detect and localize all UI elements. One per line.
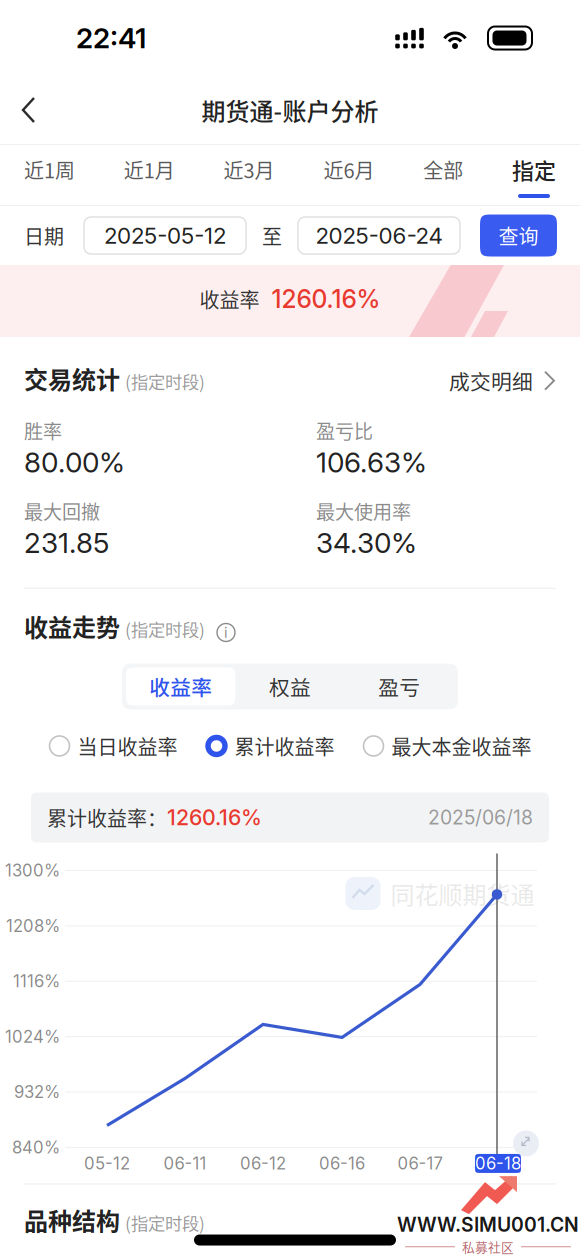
staticText: 盈亏 [378, 671, 420, 701]
button[interactable]: 全部 [423, 145, 463, 205]
staticText: 查询 [498, 221, 538, 250]
staticText: (指定时段) [125, 616, 205, 641]
staticText: 06-16 [319, 1153, 365, 1174]
button[interactable]: 收益率 [126, 667, 235, 705]
button[interactable]: 近6月 [323, 145, 374, 205]
button[interactable]: 近3月 [224, 145, 275, 205]
staticText: 06-12 [240, 1153, 286, 1174]
staticText: 近6月 [323, 155, 374, 184]
staticText: 05-12 [84, 1153, 130, 1174]
staticText: 22:41 [76, 21, 146, 55]
staticText: 成交明细 [449, 366, 533, 396]
staticText: 最大本金收益率 [391, 731, 531, 760]
button[interactable]: 返回 [0, 88, 66, 132]
staticText: WWW.SIMU001.CN [397, 1213, 579, 1236]
staticText: 932% [14, 1082, 60, 1102]
staticText: 指定 [512, 154, 556, 185]
staticText: 期货通-账户分析 [201, 93, 378, 127]
staticText: (指定时段) [125, 1210, 205, 1235]
button[interactable]: 当日收益率 [48, 731, 177, 760]
button[interactable]: 2025-05-12 [84, 217, 246, 254]
staticText: 收益走势 [24, 609, 120, 643]
staticText: 私募社区 [462, 1237, 514, 1256]
button[interactable]: 近1月 [124, 145, 175, 205]
staticText: 06-18 [475, 1153, 521, 1174]
staticText: 80.00% [24, 445, 125, 479]
staticText: 交易统计 [24, 361, 120, 396]
staticText: 最大回撤 [24, 497, 100, 525]
button[interactable]: 查询 [480, 214, 557, 256]
staticText: 胜率 [24, 417, 62, 444]
staticText: 收益率 [199, 284, 259, 313]
button[interactable]: 近1周 [24, 145, 75, 205]
staticText: 1300% [5, 860, 60, 881]
staticText: 1260.16% [167, 804, 262, 830]
staticText: 至 [262, 221, 282, 250]
staticText: 1260.16% [271, 284, 380, 314]
staticText: 231.85 [24, 526, 109, 560]
button[interactable]: 权益 [235, 667, 345, 705]
staticText: 全部 [423, 155, 463, 184]
staticText: 收益率 [149, 671, 212, 701]
staticText: 近1周 [24, 155, 75, 184]
staticText: (指定时段) [125, 369, 205, 394]
staticText: 1116% [13, 971, 60, 991]
button[interactable]: 累计收益率 [205, 731, 334, 760]
staticText: 盈亏比 [316, 417, 373, 444]
button[interactable]: 最大本金收益率 [362, 731, 531, 760]
staticText: 1024% [5, 1027, 60, 1047]
staticText: i [224, 624, 228, 641]
staticText: 1208% [6, 916, 60, 936]
staticText: 06-11 [163, 1153, 206, 1174]
staticText: 最大使用率 [316, 497, 411, 525]
button[interactable]: 盈亏 [345, 667, 454, 705]
button[interactable]: 指定 [512, 145, 556, 205]
staticText: 2025/06/18 [428, 806, 533, 829]
staticText: 近1月 [124, 155, 175, 184]
staticText: 840% [12, 1137, 60, 1158]
staticText: 近3月 [224, 155, 275, 184]
staticText: 日期 [24, 221, 64, 250]
staticText: 同花顺期货通 [390, 876, 534, 911]
staticText: 2025-06-24 [315, 222, 442, 249]
staticText: 106.63% [316, 445, 427, 479]
button[interactable]: 2025-06-24 [298, 217, 460, 254]
staticText: 当日收益率 [77, 731, 177, 760]
staticText: 品种结构 [24, 1202, 120, 1237]
staticText: 34.30% [316, 526, 417, 560]
staticText: 累计收益率： [47, 803, 167, 832]
staticText: 06-17 [397, 1153, 442, 1174]
button[interactable]: 成交明细 [449, 366, 556, 396]
staticText: 2025-05-12 [104, 222, 226, 249]
staticText: 累计收益率 [234, 731, 334, 760]
staticText: 权益 [269, 671, 311, 701]
